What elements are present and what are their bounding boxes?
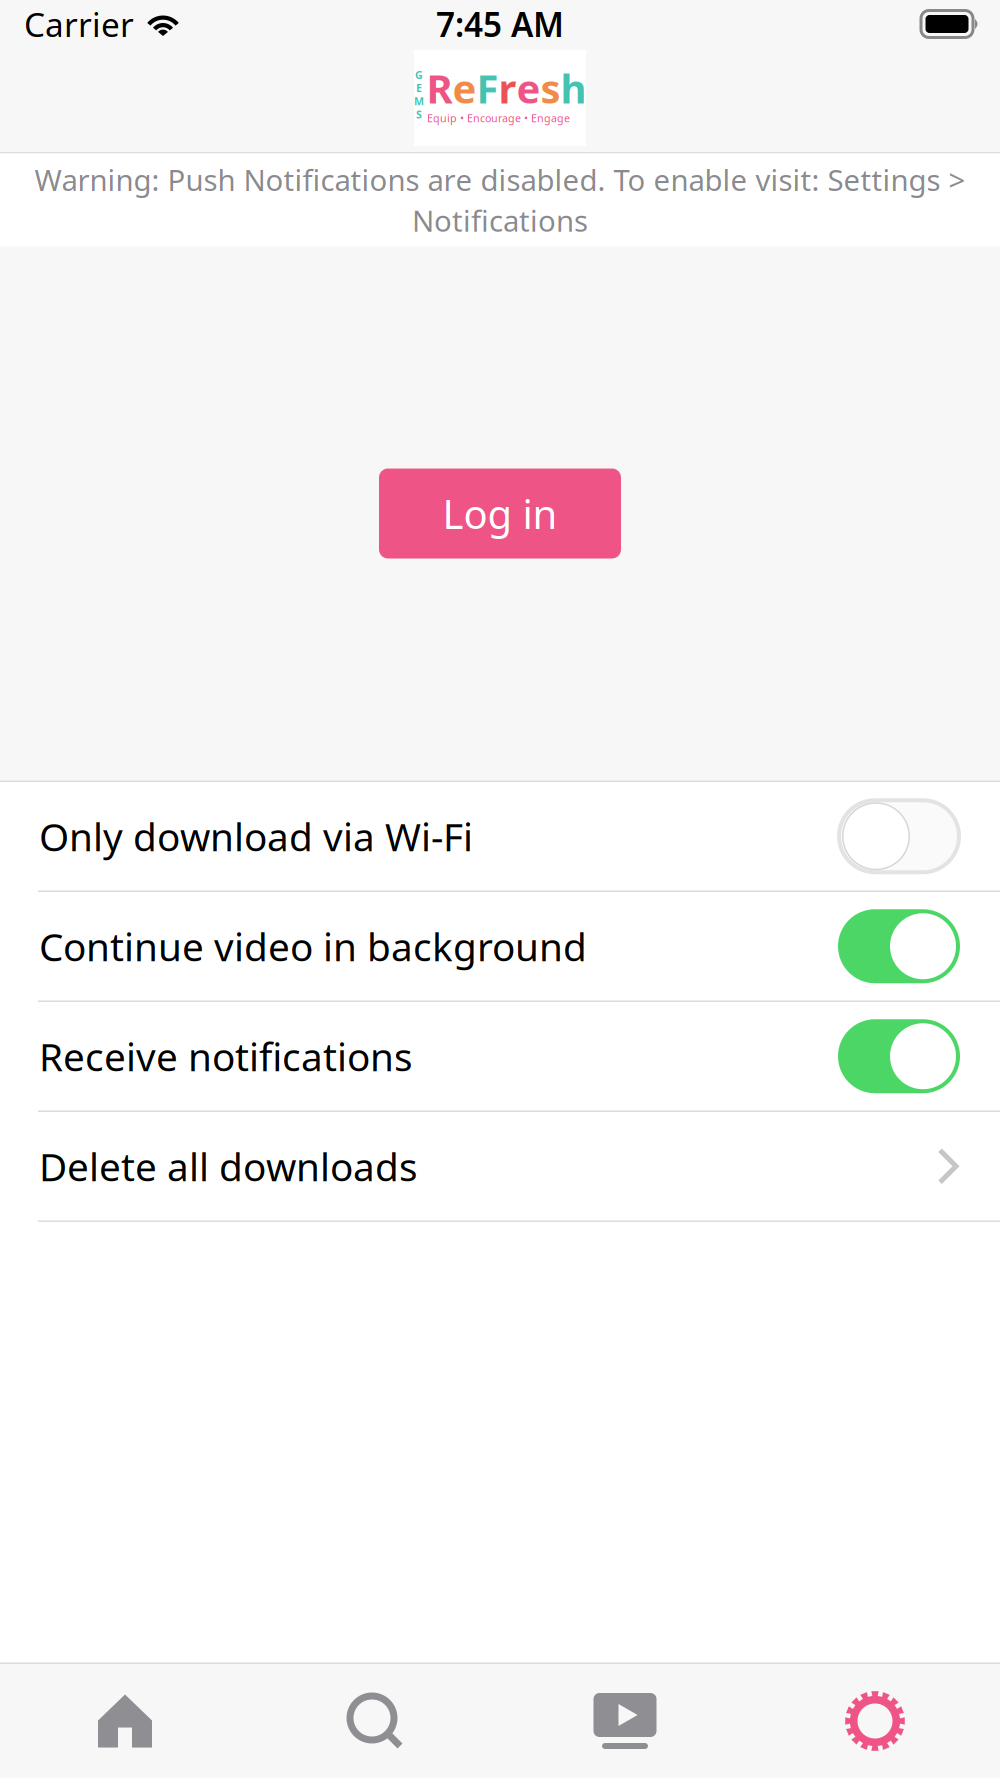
staticText: Only download via Wi-Fi <box>39 811 473 862</box>
staticText: Log in <box>442 487 557 540</box>
staticText: S <box>416 107 422 121</box>
button[interactable]: Search <box>250 1664 500 1778</box>
staticText: Carrier <box>24 2 134 46</box>
staticText: M <box>414 94 424 108</box>
staticText: Delete all downloads <box>39 1141 418 1192</box>
button[interactable]: Log in <box>379 468 621 558</box>
button[interactable]: Delete all downloads <box>0 1112 1000 1222</box>
staticText: h <box>560 61 586 114</box>
staticText: R <box>426 61 452 114</box>
staticText: Receive notifications <box>39 1031 413 1082</box>
staticText: r <box>498 61 516 114</box>
staticText: 7:45 AM <box>436 2 564 46</box>
staticText: e <box>516 61 540 114</box>
button[interactable]: Videos <box>500 1664 750 1778</box>
button[interactable]: Only download via Wi-Fi <box>0 782 1000 892</box>
button[interactable]: Home <box>0 1664 250 1778</box>
staticText: s <box>540 61 560 114</box>
staticText: Continue video in background <box>39 921 587 972</box>
button[interactable]: Receive notifications <box>0 1002 1000 1112</box>
staticText: G <box>415 68 423 82</box>
staticText: e <box>452 61 476 114</box>
staticText: F <box>476 61 498 114</box>
button[interactable]: Continue video in background <box>0 892 1000 1002</box>
staticText: E <box>416 81 422 95</box>
staticText: Equip • Encourage • Engage <box>427 111 570 125</box>
staticText: Warning: Push Notifications are disabled… <box>34 160 965 199</box>
staticText: Notifications <box>412 201 588 240</box>
button[interactable]: Settings <box>750 1664 1000 1778</box>
